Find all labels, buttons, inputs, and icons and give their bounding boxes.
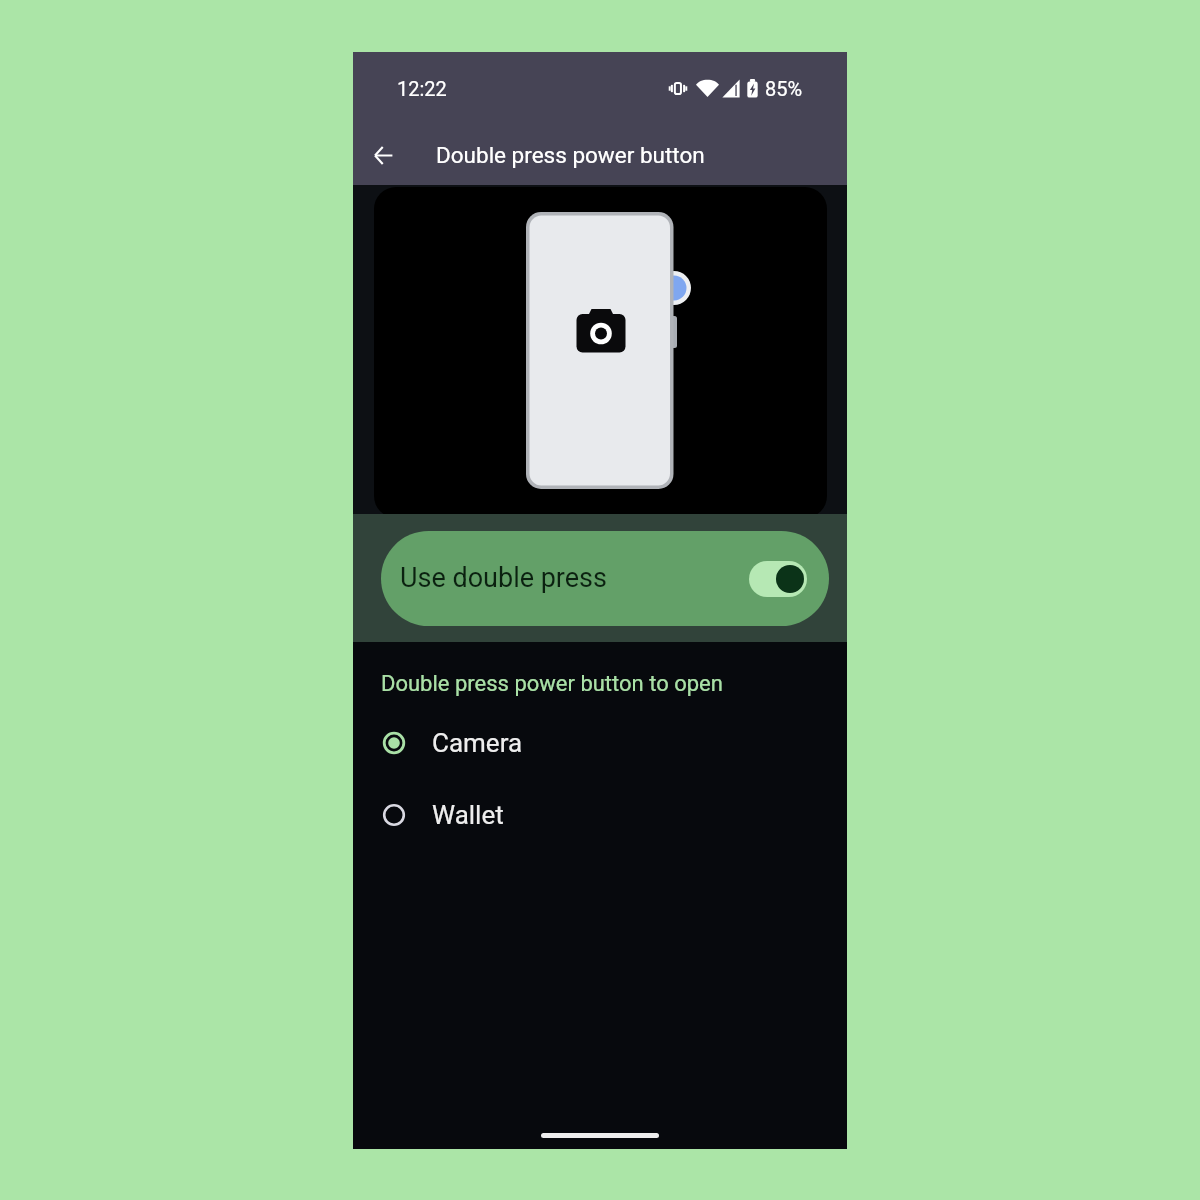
button[interactable]: Wallet [353, 779, 847, 851]
button[interactable]: Camera [353, 707, 847, 779]
button[interactable]: Back [359, 131, 407, 179]
staticText: Double press power button [436, 142, 705, 168]
staticText: 85% [765, 77, 803, 100]
staticText: Camera [432, 728, 523, 758]
button[interactable]: Use double press [381, 531, 829, 626]
staticText: 12:22 [397, 77, 447, 100]
staticText: Use double press [400, 562, 607, 594]
staticText: Wallet [432, 800, 504, 830]
staticText: Double press power button to open [381, 671, 723, 697]
